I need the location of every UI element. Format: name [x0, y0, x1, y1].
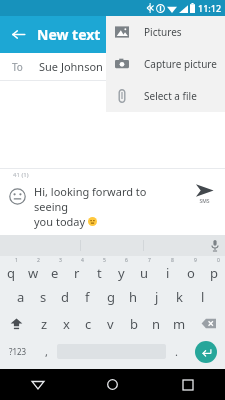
staticText: 8 [171, 257, 174, 264]
staticText: 11:12 [198, 2, 222, 14]
staticText: u [140, 264, 149, 282]
staticText: i [166, 264, 170, 282]
staticText: t [97, 264, 102, 282]
button[interactable]: 8 [156, 256, 179, 283]
staticText: l [201, 288, 205, 306]
button[interactable]: l [191, 283, 214, 310]
button[interactable]: g [99, 283, 122, 310]
staticText: . [175, 344, 178, 359]
staticText: j [155, 288, 159, 306]
staticText: n [152, 315, 161, 333]
button[interactable]: Recents [150, 369, 225, 400]
button[interactable]: m [168, 310, 191, 337]
staticText: k [176, 288, 183, 306]
button[interactable]: 1 [0, 256, 22, 283]
button[interactable]: b [122, 310, 145, 337]
button[interactable]: Pictures [106, 16, 225, 48]
staticText: 0 [217, 257, 220, 264]
staticText: y [118, 264, 125, 282]
staticText: z [41, 315, 48, 333]
button[interactable]: Back [0, 369, 75, 400]
button[interactable]: a [10, 283, 32, 310]
staticText: , [45, 344, 48, 359]
staticText: f [85, 288, 90, 306]
button[interactable]: s [32, 283, 54, 310]
staticText: New text [37, 25, 101, 44]
button[interactable]: 2 [22, 256, 44, 283]
staticText: m [173, 315, 186, 333]
button[interactable]: z [33, 310, 55, 337]
staticText: To [12, 60, 23, 74]
staticText: Select a file [144, 89, 197, 103]
staticText: SMS [199, 198, 210, 205]
staticText: a [17, 288, 25, 306]
staticText: o [187, 264, 195, 282]
button[interactable]: 9 [179, 256, 202, 283]
button[interactable]: j [145, 283, 168, 310]
staticText: Capture picture [144, 57, 217, 71]
staticText: 3 [59, 257, 62, 264]
staticText: v [107, 315, 114, 333]
staticText: q [7, 264, 15, 282]
staticText: p [210, 264, 218, 282]
staticText: Pictures [144, 25, 182, 39]
staticText: Hi, looking forward to seeing [34, 184, 183, 214]
button[interactable]: , [36, 337, 57, 366]
staticText: 4 [81, 257, 84, 264]
button[interactable]: f [76, 283, 99, 310]
button[interactable]: 4 [66, 256, 88, 283]
button[interactable]: v [99, 310, 122, 337]
staticText: d [61, 288, 69, 306]
button[interactable]: 7 [133, 256, 156, 283]
button[interactable]: Capture picture [106, 48, 225, 80]
staticText: c [85, 315, 92, 333]
button[interactable]: To [0, 53, 225, 80]
button[interactable]: k [168, 283, 191, 310]
button[interactable]: ?123 [0, 337, 36, 366]
button[interactable]: x [55, 310, 77, 337]
staticText: 5 [103, 257, 106, 264]
staticText: g [107, 288, 115, 306]
staticText: 6 [125, 257, 128, 264]
staticText: Sue Johnson [39, 59, 103, 74]
button[interactable]: Send SMS [183, 183, 225, 205]
staticText: 2 [37, 257, 40, 264]
button[interactable]: Voice input [204, 235, 225, 256]
staticText: r [74, 264, 80, 282]
staticText: s [40, 288, 47, 306]
button[interactable]: Select a file [106, 80, 225, 112]
staticText: h [129, 288, 138, 306]
staticText: 41 (1) [13, 171, 29, 179]
staticText: e [51, 264, 59, 282]
staticText: x [63, 315, 70, 333]
button[interactable]: 3 [44, 256, 66, 283]
button[interactable]: Emoji [0, 179, 34, 213]
staticText: b [130, 315, 138, 333]
button[interactable]: 6 [110, 256, 133, 283]
button[interactable]: n [145, 310, 168, 337]
button[interactable]: Back [0, 16, 37, 53]
staticText: 1 [15, 257, 18, 264]
button[interactable]: h [122, 283, 145, 310]
button[interactable]: Backspace [191, 310, 225, 337]
staticText: you today [34, 214, 88, 229]
staticText: ?123 [9, 346, 27, 357]
button[interactable]: 0 [202, 256, 225, 283]
staticText: 9 [194, 257, 197, 264]
button[interactable]: d [54, 283, 76, 310]
staticText: 7 [148, 257, 151, 264]
button[interactable]: 5 [88, 256, 110, 283]
button[interactable]: Shift [0, 310, 33, 337]
button[interactable]: Home [75, 369, 150, 400]
staticText: w [28, 264, 39, 282]
button[interactable]: c [77, 310, 99, 337]
button[interactable]: . [166, 337, 187, 366]
button[interactable]: Enter [195, 341, 217, 363]
